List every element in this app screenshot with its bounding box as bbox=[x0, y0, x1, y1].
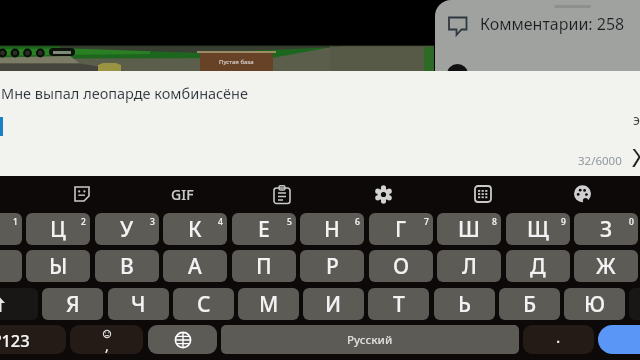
staticText: Ж bbox=[596, 252, 616, 281]
button[interactable]: Ш bbox=[437, 213, 501, 245]
staticText: З bbox=[600, 215, 613, 244]
staticText: Г bbox=[395, 215, 407, 244]
staticText: 1 bbox=[13, 216, 18, 228]
button[interactable]: GIF bbox=[166, 184, 198, 204]
staticText: Ы bbox=[49, 252, 68, 281]
button[interactable]: Д bbox=[506, 250, 570, 282]
button[interactable]: Г bbox=[369, 213, 433, 245]
staticText: Н bbox=[324, 215, 340, 244]
staticText: Л bbox=[462, 252, 477, 281]
staticText: Ч bbox=[131, 290, 146, 319]
staticText: Русский bbox=[347, 332, 393, 348]
button[interactable]: Period bbox=[523, 325, 594, 354]
button[interactable]: Ю bbox=[564, 288, 625, 320]
staticText: Е bbox=[258, 215, 270, 244]
staticText: С bbox=[197, 290, 211, 319]
button[interactable]: В bbox=[95, 250, 159, 282]
button[interactable]: Б bbox=[499, 288, 560, 320]
staticText: Б bbox=[523, 290, 537, 319]
staticText: Пустая база bbox=[219, 58, 254, 66]
staticText: А bbox=[188, 252, 202, 281]
button[interactable]: Н bbox=[300, 213, 364, 245]
button[interactable]: Change language bbox=[148, 325, 217, 354]
staticText: И bbox=[325, 290, 342, 319]
staticText: Ц bbox=[50, 215, 66, 244]
button[interactable]: Й bbox=[0, 213, 22, 245]
button[interactable]: О bbox=[369, 250, 433, 282]
button[interactable]: К bbox=[163, 213, 227, 245]
button[interactable]: З bbox=[574, 213, 638, 245]
staticText: Р bbox=[326, 252, 339, 281]
staticText: У bbox=[120, 215, 134, 244]
button[interactable]: Theme bbox=[571, 184, 595, 204]
button[interactable]: Shift bbox=[0, 288, 38, 320]
button[interactable]: Щ bbox=[506, 213, 570, 245]
staticText: Ш bbox=[458, 215, 480, 244]
staticText: . bbox=[556, 326, 561, 348]
staticText: 3 bbox=[150, 216, 155, 228]
staticText: В bbox=[120, 252, 134, 281]
staticText: ?123 bbox=[0, 329, 30, 351]
button[interactable]: Ч bbox=[108, 288, 169, 320]
button[interactable]: Е bbox=[232, 213, 296, 245]
staticText: Я bbox=[66, 290, 80, 319]
staticText: П bbox=[256, 252, 272, 281]
staticText: М bbox=[259, 290, 279, 319]
button[interactable]: Л bbox=[437, 250, 501, 282]
button[interactable]: Р bbox=[300, 250, 364, 282]
button[interactable]: Resize keyboard bbox=[471, 184, 495, 204]
staticText: Ь bbox=[458, 290, 471, 319]
button[interactable]: Comma bbox=[70, 325, 143, 354]
button[interactable]: Т bbox=[368, 288, 429, 320]
staticText: Д bbox=[530, 252, 546, 281]
staticText: Т bbox=[393, 290, 405, 319]
button[interactable]: Я bbox=[42, 288, 103, 320]
staticText: 6 bbox=[355, 216, 360, 228]
staticText: 5 bbox=[287, 216, 292, 228]
staticText: Ю bbox=[584, 290, 606, 319]
staticText: О bbox=[393, 252, 410, 281]
staticText: 8 bbox=[492, 216, 497, 228]
staticText: Щ bbox=[527, 215, 549, 244]
button[interactable]: А bbox=[163, 250, 227, 282]
button[interactable]: Комментарии: 258 bbox=[435, 0, 640, 71]
button[interactable]: М bbox=[238, 288, 299, 320]
staticText: 9 bbox=[561, 216, 566, 228]
button[interactable]: Ц bbox=[26, 213, 90, 245]
staticText: Мне выпал леопарде комбинасёне bbox=[1, 83, 248, 103]
staticText: Ж bbox=[632, 139, 640, 174]
button[interactable]: Clipboard bbox=[270, 184, 294, 204]
staticText: GIF bbox=[171, 185, 194, 204]
button[interactable]: С bbox=[173, 288, 234, 320]
staticText: , bbox=[105, 336, 109, 354]
staticText: 4 bbox=[218, 216, 223, 228]
staticText: э bbox=[633, 110, 640, 129]
button[interactable]: Stickers bbox=[70, 184, 94, 204]
button[interactable]: Ы bbox=[26, 250, 90, 282]
button[interactable]: У bbox=[95, 213, 159, 245]
button[interactable]: Space bbox=[221, 325, 519, 354]
button[interactable]: Settings bbox=[371, 184, 395, 204]
staticText: 0 bbox=[629, 216, 634, 228]
button[interactable]: П bbox=[232, 250, 296, 282]
button[interactable]: И bbox=[303, 288, 364, 320]
staticText: 7 bbox=[424, 216, 429, 228]
button[interactable]: Ж bbox=[574, 250, 638, 282]
staticText: Комментарии: 258 bbox=[480, 13, 625, 35]
button[interactable]: Enter bbox=[598, 325, 640, 354]
button[interactable]: Ь bbox=[434, 288, 495, 320]
staticText: 2 bbox=[81, 216, 86, 228]
staticText: 32/6000 bbox=[578, 153, 622, 169]
button[interactable]: key bbox=[0, 325, 66, 354]
button[interactable]: Ф bbox=[0, 250, 22, 282]
staticText: К bbox=[188, 215, 202, 244]
